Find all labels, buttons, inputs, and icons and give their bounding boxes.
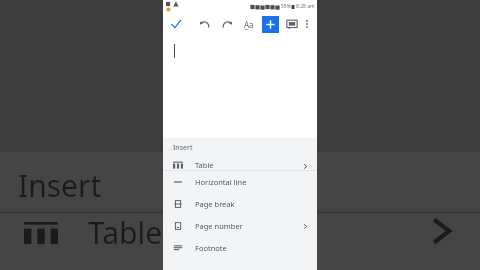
staticText: Table bbox=[88, 212, 163, 253]
button[interactable]: A̲a bbox=[241, 16, 257, 32]
staticText: Insert bbox=[173, 143, 193, 153]
button[interactable]: Table bbox=[163, 156, 317, 170]
staticText: 8:28 am bbox=[296, 3, 315, 10]
button[interactable]: Insert bbox=[262, 16, 279, 33]
staticText: Page number bbox=[195, 221, 302, 231]
button[interactable]: Comment bbox=[284, 16, 300, 32]
button[interactable]: Footnote bbox=[163, 237, 317, 259]
staticText: 55% bbox=[281, 3, 291, 10]
staticText: Page break bbox=[195, 199, 309, 209]
button[interactable]: Undo bbox=[197, 16, 213, 32]
button[interactable]: Redo bbox=[219, 16, 235, 32]
button[interactable]: Page break bbox=[163, 193, 317, 215]
button[interactable]: More options bbox=[300, 17, 313, 31]
staticText: Insert bbox=[18, 165, 102, 206]
button[interactable]: Page number bbox=[163, 215, 317, 237]
staticText: Table bbox=[195, 160, 302, 170]
staticText: A̲a bbox=[244, 19, 254, 30]
staticText: Horizontal line bbox=[195, 177, 309, 187]
staticText: Footnote bbox=[195, 243, 309, 253]
button[interactable]: Horizontal line bbox=[163, 171, 317, 193]
button[interactable]: Done bbox=[167, 15, 185, 33]
